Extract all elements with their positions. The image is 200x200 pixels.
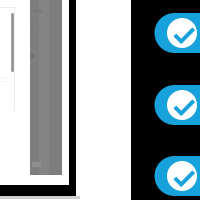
button[interactable]: Task completed: [154, 13, 200, 53]
button[interactable]: Task completed: [154, 85, 200, 125]
button[interactable]: Task completed: [154, 156, 200, 196]
